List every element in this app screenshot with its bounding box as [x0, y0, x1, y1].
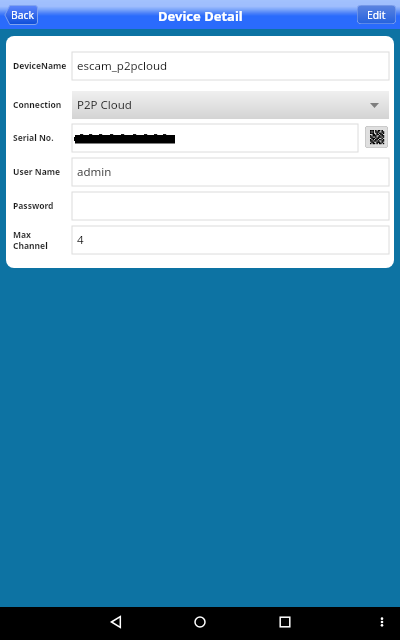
staticText: DeviceName: [13, 60, 67, 72]
button[interactable]: admin: [72, 158, 389, 186]
button[interactable]: Recent apps: [265, 605, 305, 638]
button[interactable]: escam_p2pcloud: [72, 52, 389, 80]
staticText: escam_p2pcloud: [77, 58, 168, 74]
button[interactable]: [72, 124, 358, 152]
button[interactable]: Edit: [357, 5, 396, 24]
staticText: User Name: [13, 166, 61, 178]
button[interactable]: Scan QR code: [365, 126, 388, 148]
staticText: Edit: [367, 8, 386, 22]
staticText: Device Detail: [158, 7, 243, 25]
staticText: Connection: [13, 99, 62, 111]
staticText: Max Channel: [13, 229, 48, 251]
staticText: Serial No.: [13, 132, 54, 144]
button[interactable]: Back: [4, 5, 38, 25]
button[interactable]: [72, 192, 389, 220]
staticText: Password: [13, 200, 54, 212]
staticText: Back: [11, 8, 34, 22]
button[interactable]: P2P Cloud: [72, 91, 389, 119]
button[interactable]: Back: [96, 605, 136, 638]
button[interactable]: 4: [72, 226, 389, 254]
staticText: P2P Cloud: [77, 97, 132, 113]
button[interactable]: Home: [180, 605, 220, 638]
staticText: admin: [77, 164, 112, 180]
staticText: 4: [77, 232, 84, 248]
button[interactable]: More options: [362, 605, 400, 638]
